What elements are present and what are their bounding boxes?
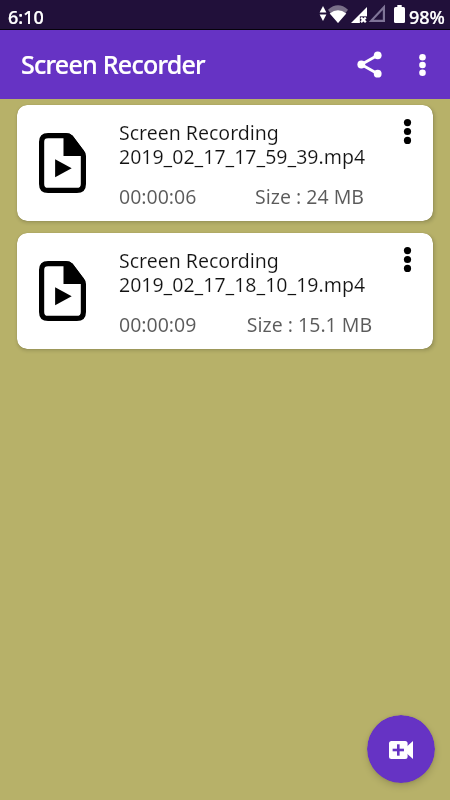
button[interactable]: More options — [398, 29, 446, 99]
button[interactable]: New recording — [367, 715, 435, 783]
button[interactable]: More options — [385, 105, 433, 157]
staticText: Size : 24 MB — [197, 183, 422, 210]
button[interactable]: More options — [385, 233, 433, 285]
staticText: 6:10 — [8, 5, 44, 30]
staticText: Size : 15.1 MB — [197, 311, 422, 338]
staticText: 2019_02_17_17_59_39.mp4 — [119, 143, 366, 170]
staticText: 2019_02_17_18_10_19.mp4 — [119, 271, 366, 298]
staticText: Screen Recorder — [21, 47, 205, 81]
staticText: 00:00:06 — [119, 183, 197, 210]
staticText: 98% — [409, 5, 445, 30]
staticText: Screen Recording — [119, 247, 279, 274]
button[interactable]: Screen Recording — [17, 105, 433, 221]
staticText: Screen Recording — [119, 119, 279, 146]
button[interactable]: Share — [346, 29, 394, 99]
button[interactable]: Screen Recording — [17, 233, 433, 349]
staticText: 00:00:09 — [119, 311, 197, 338]
